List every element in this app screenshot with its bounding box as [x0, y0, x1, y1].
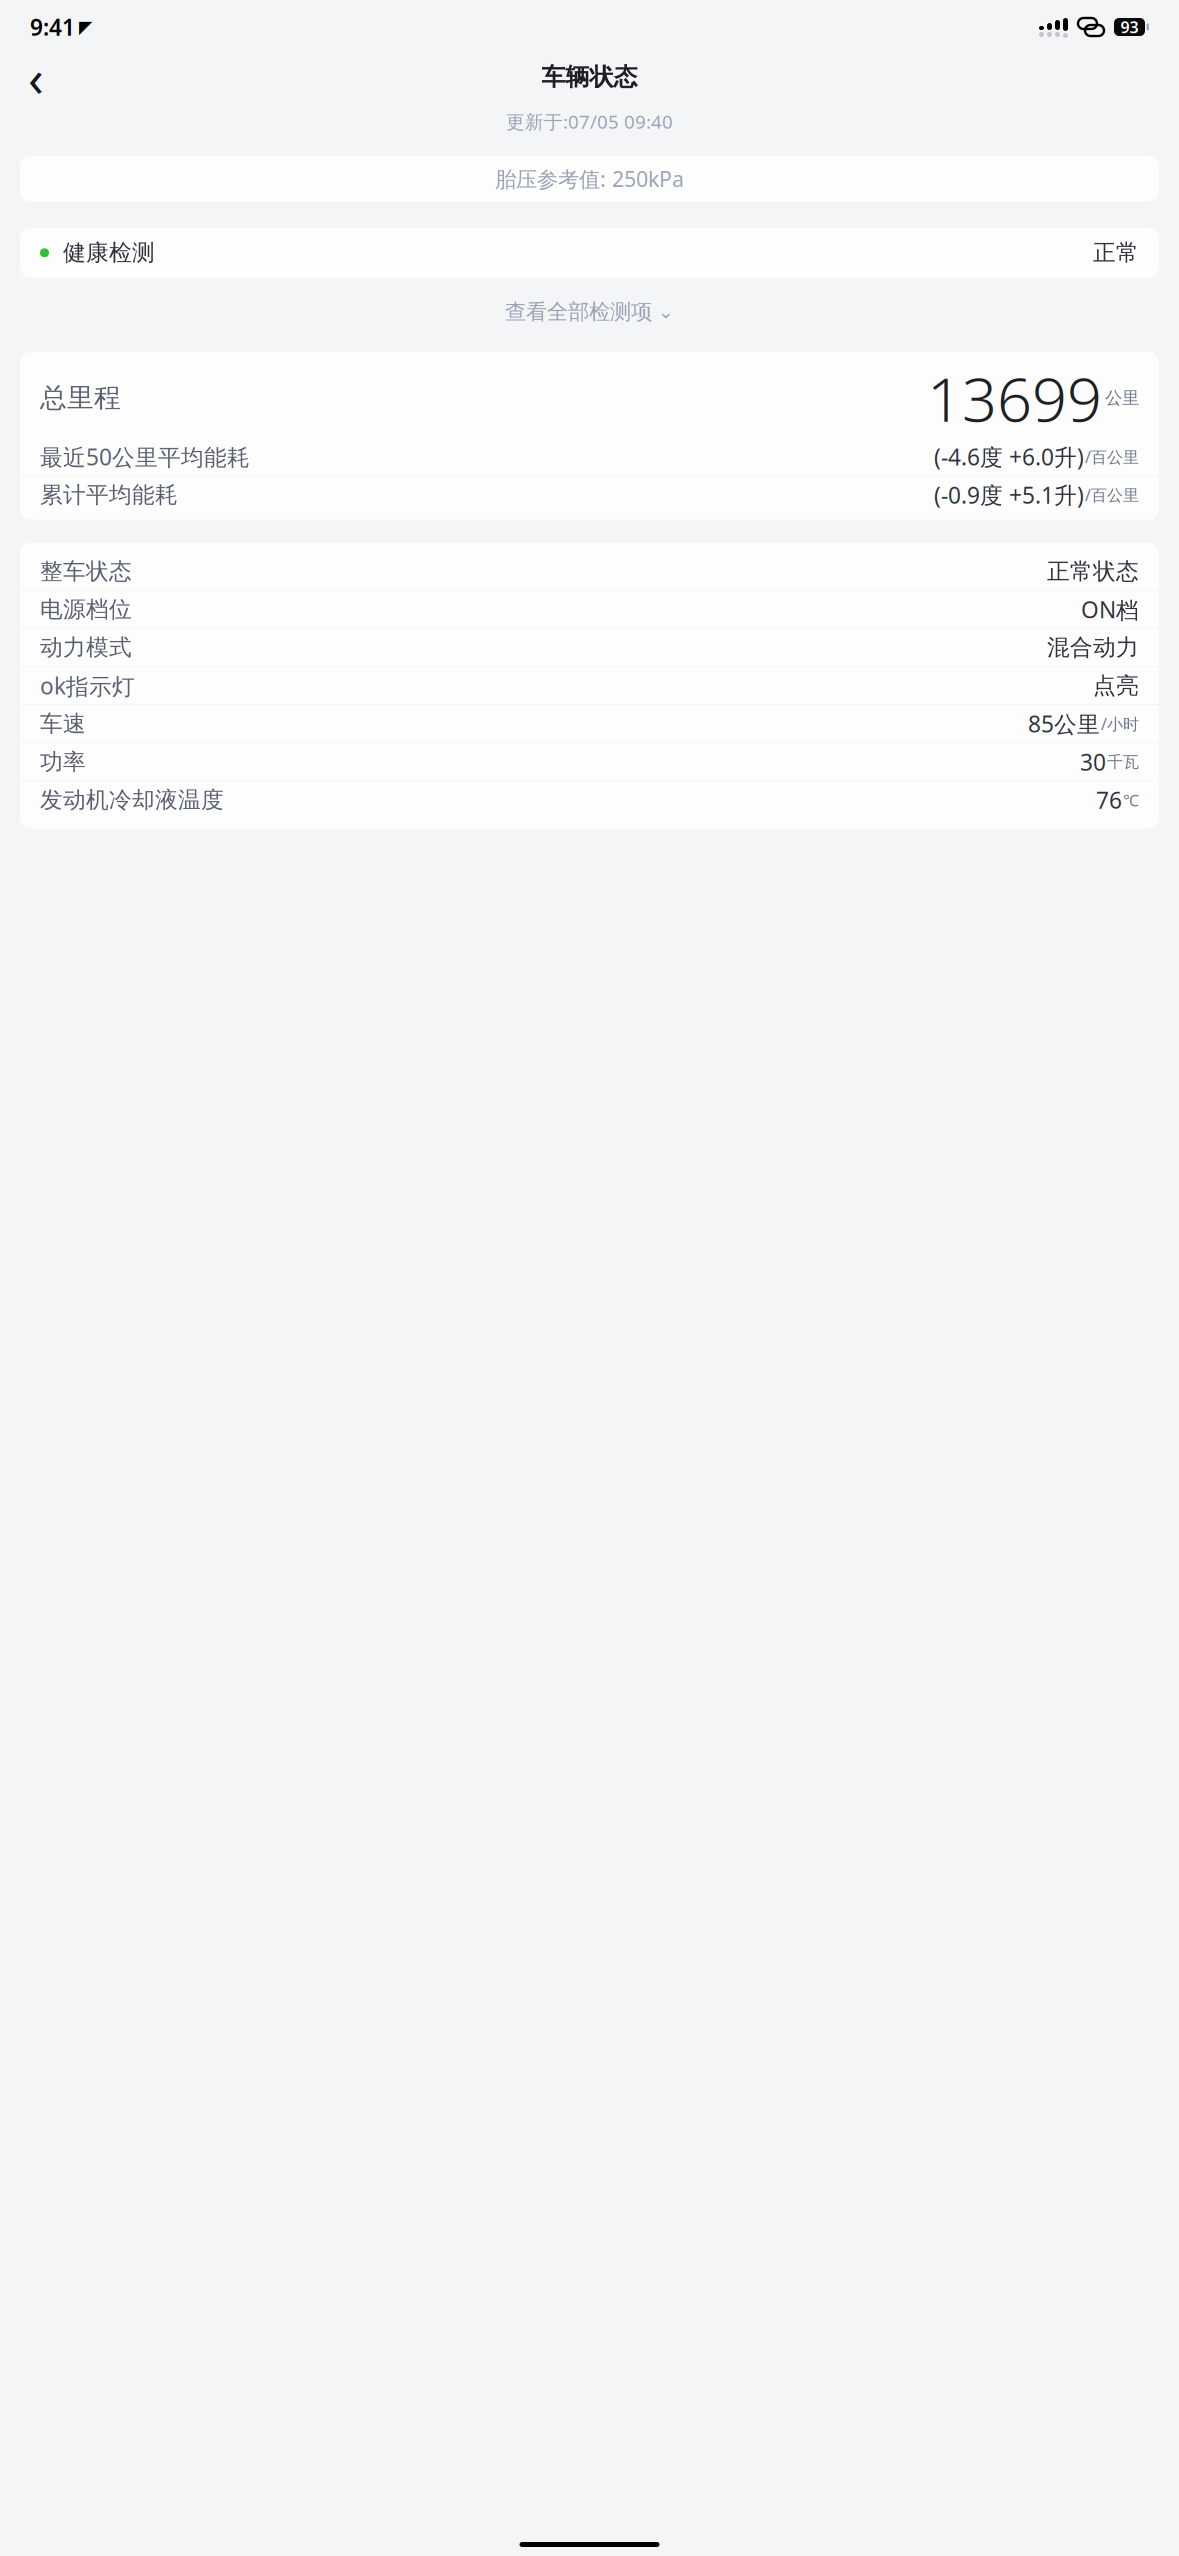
staticText: 功率: [40, 748, 86, 776]
button[interactable]: 最近50公里平均能耗: [20, 438, 1159, 475]
button[interactable]: 动力模式: [20, 629, 1159, 666]
staticText: ON档: [1081, 594, 1139, 624]
staticText: 公里: [1105, 387, 1139, 409]
staticText: 混合动力: [1047, 634, 1139, 661]
staticText: 车速: [40, 710, 86, 738]
button[interactable]: 整车状态: [20, 553, 1159, 590]
staticText: ℃: [1123, 789, 1139, 810]
button[interactable]: 累计平均能耗: [20, 476, 1159, 514]
button[interactable]: 电源档位: [20, 591, 1159, 628]
staticText: ‹: [28, 43, 44, 111]
staticText: 30: [1080, 747, 1106, 777]
staticText: 总里程: [40, 382, 121, 414]
staticText: ok指示灯: [40, 670, 135, 701]
button[interactable]: 车速: [20, 705, 1159, 742]
staticText: 动力模式: [40, 634, 132, 661]
staticText: /百公里: [1085, 446, 1139, 467]
staticText: 健康检测: [63, 239, 155, 267]
staticText: 93: [1120, 16, 1138, 38]
staticText: 更新于:07/05 09:40: [506, 109, 673, 134]
staticText: 76: [1096, 785, 1122, 815]
staticText: 最近50公里平均能耗: [40, 442, 250, 472]
staticText: 发动机冷却液温度: [40, 786, 224, 814]
button[interactable]: ok指示灯: [20, 667, 1159, 704]
staticText: /百公里: [1085, 484, 1139, 505]
staticText: 整车状态: [40, 557, 132, 585]
staticText: (-4.6度 +6.0升): [934, 442, 1084, 472]
staticText: (-0.9度 +5.1升): [934, 480, 1084, 510]
staticText: 点亮: [1093, 672, 1139, 699]
button[interactable]: 功率: [20, 743, 1159, 781]
staticText: 13699: [927, 357, 1102, 439]
staticText: /小时: [1101, 713, 1139, 734]
staticText: 正常状态: [1047, 557, 1139, 585]
staticText: 千瓦: [1107, 752, 1139, 772]
staticText: ◤: [79, 17, 92, 37]
button[interactable]: 健康检测: [20, 228, 1159, 278]
staticText: 85公里: [1028, 709, 1100, 739]
button[interactable]: Back: [14, 55, 58, 99]
staticText: 胎压参考值: 250kPa: [495, 165, 684, 193]
staticText: 9:41: [30, 12, 75, 42]
staticText: 累计平均能耗: [40, 481, 178, 509]
button[interactable]: 查看全部检测项: [489, 290, 690, 334]
staticText: ⌄: [658, 301, 674, 322]
staticText: 电源档位: [40, 595, 132, 623]
button[interactable]: 发动机冷却液温度: [20, 781, 1159, 819]
staticText: 正常: [1093, 239, 1139, 267]
staticText: 车辆状态: [541, 62, 637, 92]
staticText: 查看全部检测项: [505, 299, 652, 325]
